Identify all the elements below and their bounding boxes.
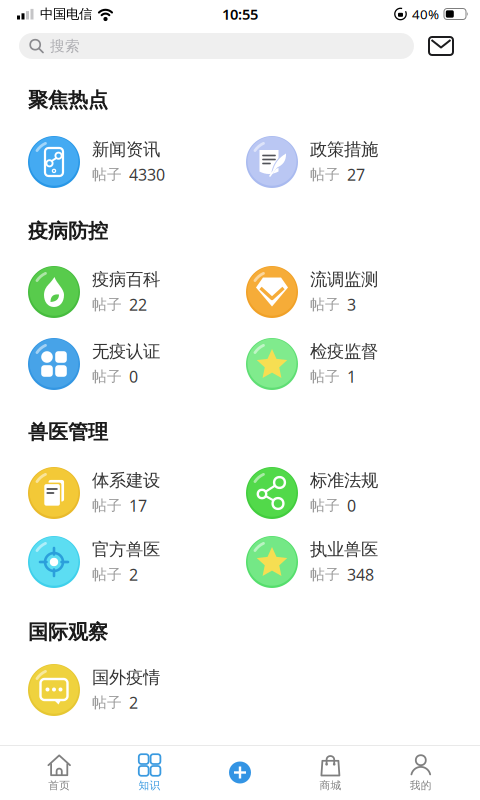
button[interactable]: 新闻资讯 [28, 136, 246, 188]
button[interactable]: 无疫认证 [28, 338, 246, 390]
staticText: 348 [347, 564, 374, 585]
staticText: 知识 [139, 779, 161, 792]
staticText: 国际观察 [28, 620, 108, 644]
staticText: 0 [347, 495, 356, 516]
button[interactable]: 搜索 [19, 33, 414, 59]
button[interactable]: 流调监测 [246, 266, 480, 318]
button[interactable]: 首页 [14, 745, 104, 800]
staticText: 帖子 [92, 497, 122, 515]
button[interactable]: 发布 [195, 745, 285, 800]
staticText: 帖子 [310, 497, 340, 515]
staticText: 帖子 [310, 566, 340, 584]
staticText: 国外疫情 [92, 667, 160, 688]
staticText: 帖子 [92, 566, 122, 584]
button[interactable]: 商城 [285, 745, 376, 800]
button[interactable]: 执业兽医 [246, 536, 480, 588]
staticText: 2 [129, 564, 138, 585]
staticText: 聚焦热点 [28, 88, 108, 112]
button[interactable]: 知识 [104, 745, 195, 800]
staticText: 帖子 [310, 368, 340, 386]
staticText: 政策措施 [310, 139, 378, 160]
staticText: 17 [129, 495, 147, 516]
staticText: 2 [129, 692, 138, 713]
staticText: 4330 [129, 164, 165, 185]
staticText: 3 [347, 294, 356, 315]
staticText: 帖子 [92, 166, 122, 184]
staticText: 22 [129, 294, 147, 315]
staticText: 帖子 [92, 296, 122, 314]
staticText: 无疫认证 [92, 341, 160, 362]
button[interactable]: 官方兽医 [28, 536, 246, 588]
staticText: 帖子 [92, 694, 122, 712]
staticText: 新闻资讯 [92, 139, 160, 160]
staticText: 27 [347, 164, 365, 185]
button[interactable]: 政策措施 [246, 136, 480, 188]
button[interactable]: 疫病百科 [28, 266, 246, 318]
staticText: 帖子 [92, 368, 122, 386]
staticText: 帖子 [310, 296, 340, 314]
staticText: 我的 [410, 779, 432, 792]
button[interactable]: 消息 [414, 37, 480, 55]
staticText: 40% [412, 5, 439, 23]
staticText: 检疫监督 [310, 341, 378, 362]
staticText: 体系建设 [92, 470, 160, 491]
staticText: 流调监测 [310, 269, 378, 290]
staticText: 疫病防控 [28, 219, 108, 243]
button[interactable]: 检疫监督 [246, 338, 480, 390]
button[interactable]: 标准法规 [246, 467, 480, 519]
staticText: 兽医管理 [28, 420, 108, 444]
staticText: 搜索 [50, 37, 80, 55]
staticText: 中国电信 [40, 6, 92, 22]
button[interactable]: 体系建设 [28, 467, 246, 519]
staticText: 0 [129, 366, 138, 387]
staticText: 标准法规 [310, 470, 378, 491]
staticText: 10:55 [222, 4, 258, 24]
staticText: 执业兽医 [310, 539, 378, 560]
staticText: 疫病百科 [92, 269, 160, 290]
staticText: 首页 [48, 779, 70, 792]
button[interactable]: 国外疫情 [28, 664, 246, 716]
button[interactable]: 我的 [376, 745, 466, 800]
staticText: 1 [347, 366, 356, 387]
staticText: 商城 [319, 779, 341, 792]
staticText: 官方兽医 [92, 539, 160, 560]
staticText: 帖子 [310, 166, 340, 184]
